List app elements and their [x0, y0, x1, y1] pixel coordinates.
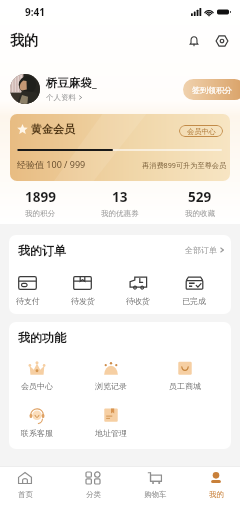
- button[interactable]: 已完成: [166, 276, 222, 306]
- staticText: 我的订单: [18, 243, 66, 258]
- button[interactable]: 购物车: [131, 470, 179, 499]
- staticText: 待收货: [126, 296, 150, 306]
- button[interactable]: 全部订单: [185, 245, 225, 255]
- staticText: 购物车: [144, 490, 167, 499]
- button[interactable]: 浏览记录: [74, 361, 148, 391]
- staticText: 分类: [86, 490, 101, 499]
- staticText: 黄金会员: [31, 122, 75, 136]
- button[interactable]: Notifications: [183, 30, 205, 52]
- button[interactable]: 1899: [0, 188, 80, 218]
- staticText: 会员中心: [21, 381, 53, 391]
- button[interactable]: 地址管理: [74, 408, 148, 438]
- staticText: 首页: [18, 490, 33, 499]
- button[interactable]: 13: [80, 188, 160, 218]
- button[interactable]: 员工商城: [148, 361, 222, 391]
- staticText: 待发货: [71, 296, 95, 306]
- button[interactable]: 签到领积分: [183, 79, 240, 100]
- button[interactable]: 联系客服: [9, 408, 74, 438]
- button[interactable]: 会员中心: [9, 361, 74, 391]
- staticText: 再消费899可升为至尊会员: [142, 160, 227, 170]
- staticText: 我的功能: [18, 330, 66, 345]
- staticText: 529: [188, 188, 212, 206]
- button[interactable]: 黄金会员: [10, 114, 230, 181]
- button[interactable]: 待发货: [55, 276, 110, 306]
- staticText: 地址管理: [95, 428, 127, 438]
- button[interactable]: Avatar: [10, 74, 40, 104]
- staticText: 浏览记录: [95, 381, 127, 391]
- staticText: 员工商城: [169, 381, 201, 391]
- staticText: 待支付: [16, 296, 40, 306]
- button[interactable]: 首页: [1, 470, 49, 499]
- staticText: 联系客服: [21, 428, 53, 438]
- button[interactable]: Settings: [211, 30, 233, 52]
- staticText: 我的收藏: [185, 209, 215, 218]
- button[interactable]: 待支付: [9, 276, 55, 306]
- staticText: 桥豆麻袋_: [46, 75, 97, 91]
- staticText: 我的优惠券: [101, 209, 139, 218]
- staticText: 会员中心: [187, 127, 216, 136]
- button[interactable]: 529: [160, 188, 240, 218]
- staticText: 我的: [10, 32, 38, 50]
- button[interactable]: 分类: [69, 470, 117, 499]
- button[interactable]: 会员中心: [179, 125, 223, 137]
- staticText: 全部订单: [185, 245, 217, 255]
- button[interactable]: 我的: [192, 470, 240, 499]
- staticText: 9:41: [25, 5, 45, 19]
- staticText: 个人资料: [46, 93, 76, 102]
- button[interactable]: 桥豆麻袋_: [46, 75, 97, 102]
- staticText: 经验值 100 / 999: [17, 158, 86, 170]
- button[interactable]: 待收货: [110, 276, 166, 306]
- staticText: 1899: [25, 188, 56, 206]
- staticText: 签到领积分: [192, 85, 232, 95]
- staticText: 我的积分: [25, 209, 55, 218]
- staticText: 我的: [209, 490, 224, 499]
- staticText: 已完成: [182, 296, 206, 306]
- staticText: 13: [112, 188, 128, 206]
